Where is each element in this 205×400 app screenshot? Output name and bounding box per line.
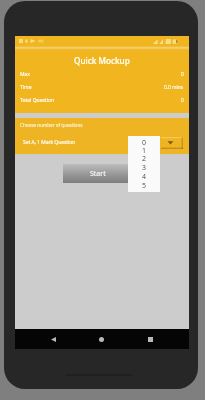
button[interactable]: 1 (128, 146, 160, 154)
staticText: 0.0 mins (164, 84, 184, 91)
staticText: Time (20, 84, 32, 91)
staticText: 0 (181, 97, 184, 104)
button[interactable]: 5 (128, 181, 160, 190)
staticText: Set A, 1 Mark Question (23, 139, 76, 146)
button[interactable]: Home (85, 329, 117, 349)
staticText: 0 (142, 138, 147, 146)
button[interactable]: Choose number of questions (161, 137, 183, 149)
staticText: 2 (142, 154, 147, 163)
button[interactable]: Recent apps (134, 329, 166, 349)
staticText: 3 (142, 163, 147, 172)
staticText: 5 (142, 181, 147, 190)
button[interactable]: Start (63, 164, 132, 183)
staticText: 0 (181, 71, 184, 78)
staticText: Total Question (20, 97, 55, 104)
staticText: Max (20, 71, 30, 78)
staticText: 1 (142, 146, 147, 154)
staticText: Start (90, 169, 106, 179)
button[interactable]: 4 (128, 172, 160, 181)
staticText: Choose number of questions (20, 122, 83, 128)
button[interactable]: 2 (128, 154, 160, 163)
button[interactable]: Back (37, 329, 69, 349)
staticText: Quick Mockup (74, 55, 130, 66)
button[interactable]: 3 (128, 163, 160, 172)
staticText: 4 (142, 172, 147, 181)
button[interactable]: 0 (128, 138, 160, 146)
